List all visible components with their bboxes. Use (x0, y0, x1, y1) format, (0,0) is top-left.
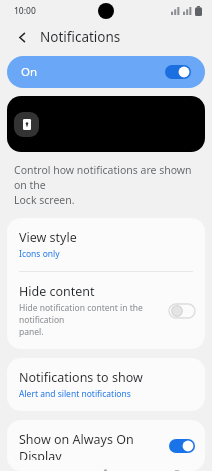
button[interactable]: View style (7, 218, 205, 271)
staticText: Hide notification content in the notific… (19, 302, 163, 338)
staticText: On (21, 64, 38, 80)
button[interactable]: On (7, 56, 205, 88)
button[interactable]: Back (10, 25, 34, 49)
staticText: Hide content (19, 283, 95, 300)
staticText: Notifications to show (19, 369, 143, 386)
staticText: Icons only (19, 248, 60, 260)
staticText: Show on Always On Display (19, 431, 163, 460)
button[interactable]: Toggle on (169, 439, 195, 453)
button[interactable]: Notifications to show (7, 358, 205, 411)
button[interactable]: Toggle off (169, 304, 195, 318)
staticText: Control how notifications are shown on t… (14, 163, 198, 207)
staticText: Notifications (40, 28, 121, 46)
staticText: View style (19, 229, 77, 246)
staticText: Alert and silent notifications (19, 388, 131, 400)
button[interactable]: Show on Always On Display (7, 420, 205, 471)
button[interactable]: Hide content (7, 272, 205, 349)
staticText: 10:00 (14, 5, 36, 17)
button[interactable]: Toggle on (165, 65, 191, 79)
